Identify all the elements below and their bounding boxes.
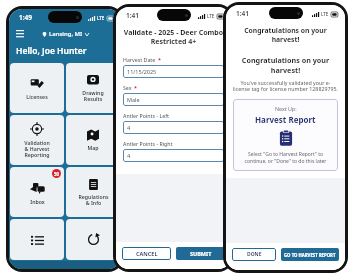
button[interactable]: 4 xyxy=(123,121,224,134)
button[interactable]: 4 xyxy=(123,149,224,162)
staticText: Map xyxy=(87,144,99,151)
button[interactable]: Regulations & Info xyxy=(66,167,120,217)
button[interactable]: DONE xyxy=(232,248,276,261)
staticText: Lansing, MI xyxy=(49,30,83,38)
staticText: Next Up: xyxy=(275,105,297,112)
button[interactable]: Menu xyxy=(13,27,26,40)
staticText: * xyxy=(134,84,137,91)
staticText: Validate - 2025 - Deer Combo Restricted … xyxy=(123,28,224,46)
staticText: Antler Points - Left xyxy=(123,112,170,119)
staticText: DONE xyxy=(247,251,262,258)
staticText: LTE xyxy=(321,11,329,17)
staticText: 1:41 xyxy=(126,11,139,20)
staticText: GO TO HARVEST REPORT xyxy=(284,252,336,258)
button[interactable]: Male xyxy=(123,93,224,106)
button[interactable]: SUBMIT xyxy=(176,247,225,260)
staticText: You've successfully validated your e-lic… xyxy=(233,79,338,93)
staticText: Hello, Joe Hunter xyxy=(16,45,87,57)
staticText: 1:41 xyxy=(236,9,249,18)
staticText: Antler Points - Right xyxy=(123,140,173,147)
button[interactable]: 11/15/2025 xyxy=(123,65,224,78)
staticText: CANCEL xyxy=(136,250,158,257)
staticText: * xyxy=(158,56,161,63)
button[interactable]: Inbox xyxy=(10,167,64,217)
staticText: Validation & Harvest Reporting xyxy=(13,139,61,158)
staticText: Harvest Report xyxy=(255,114,316,125)
button[interactable]: Licenses xyxy=(10,63,64,113)
staticText: Harvest Date xyxy=(123,56,156,63)
staticText: Male xyxy=(127,96,140,103)
button[interactable]: Validation & Harvest Reporting xyxy=(10,115,64,165)
staticText: Congratulations on your harvest! xyxy=(233,55,338,75)
staticText: 50 xyxy=(54,171,60,177)
staticText: Select "Go to Harvest Report" to continu… xyxy=(238,151,333,165)
staticText: LTE xyxy=(207,13,215,19)
button[interactable]: CANCEL xyxy=(122,247,171,260)
staticText: 11/15/2025 xyxy=(127,68,157,75)
staticText: Sex xyxy=(123,84,132,91)
staticText: Drawing Results xyxy=(82,89,104,102)
staticText: Licenses xyxy=(26,93,48,100)
staticText: Regulations & Info xyxy=(78,193,109,206)
staticText: Congratulations on your harvest! xyxy=(231,26,340,44)
staticText: SUBMIT xyxy=(190,250,212,257)
button[interactable]: Lansing, MI xyxy=(42,30,89,38)
staticText: Inbox xyxy=(30,198,45,205)
button[interactable]: Map xyxy=(66,115,120,165)
button[interactable]: Refresh xyxy=(66,219,120,260)
button[interactable]: List xyxy=(10,219,64,260)
staticText: LTE xyxy=(97,15,105,21)
staticText: 1:49 xyxy=(19,13,32,22)
staticText: 4 xyxy=(127,124,131,131)
button[interactable]: Drawing Results xyxy=(66,63,120,113)
staticText: 4 xyxy=(127,152,131,159)
button[interactable]: GO TO HARVEST REPORT xyxy=(281,248,339,261)
